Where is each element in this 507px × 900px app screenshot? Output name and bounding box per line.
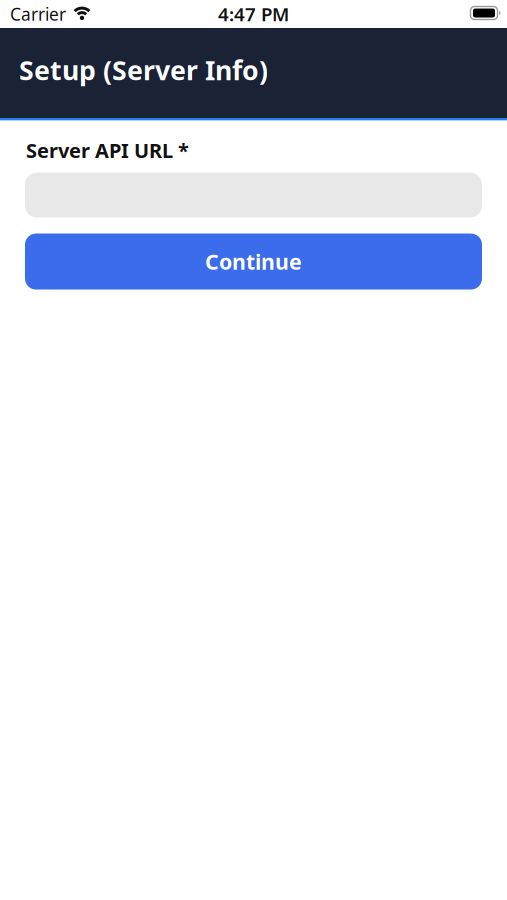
button[interactable]: Continue [25,234,482,290]
staticText: Continue [205,247,302,276]
staticText: Setup (Server Info) [19,52,268,88]
staticText: Server API URL * [26,137,189,164]
staticText: 4:47 PM [218,2,289,26]
staticText: Carrier [10,2,66,25]
